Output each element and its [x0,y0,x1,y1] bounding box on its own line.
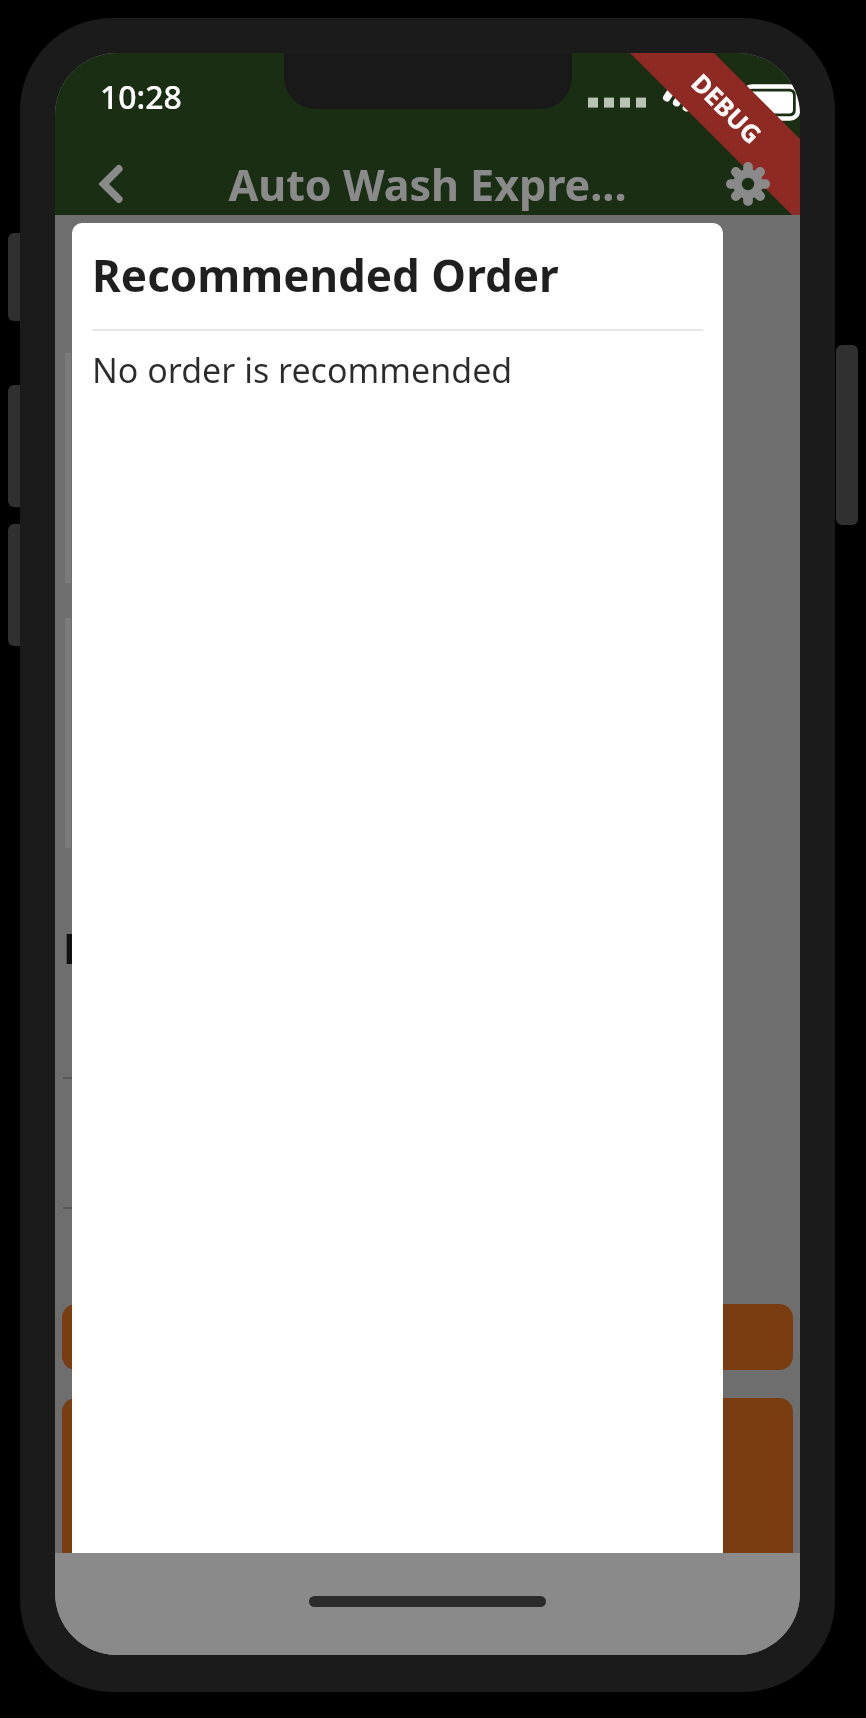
button[interactable]: Settings [712,153,784,215]
staticText: Auto Wash Expre... [228,155,627,214]
button[interactable]: Back [77,153,147,215]
button[interactable] [62,1304,793,1370]
staticText: Recommended Order [92,245,559,305]
button[interactable] [62,1398,411,1572]
button[interactable] [437,1398,793,1572]
staticText: 10:28 [100,75,182,119]
staticText: DEBUG [685,66,769,150]
staticText: No order is recommended [92,347,513,393]
staticText: P [63,919,90,976]
